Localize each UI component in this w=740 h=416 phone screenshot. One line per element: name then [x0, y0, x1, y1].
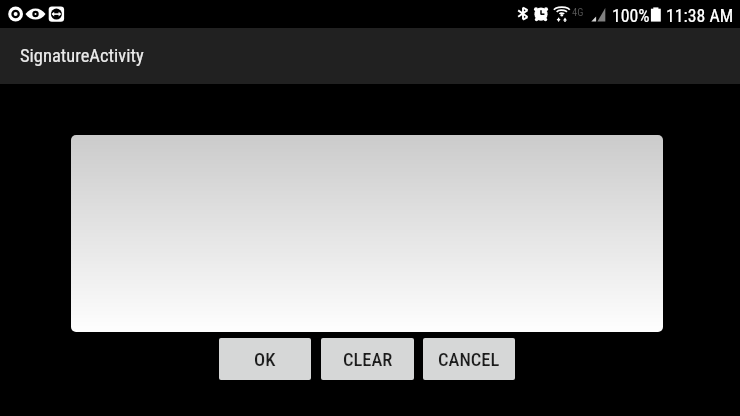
- button[interactable]: CLEAR: [321, 338, 414, 380]
- staticText: OK: [254, 349, 276, 371]
- button[interactable]: OK: [219, 338, 311, 380]
- staticText: CLEAR: [343, 349, 393, 371]
- staticText: 11:38 AM: [666, 5, 734, 26]
- staticText: SignatureActivity: [20, 45, 144, 67]
- button[interactable]: CANCEL: [423, 338, 515, 380]
- button[interactable]: Signature drawing pad: [71, 135, 663, 332]
- staticText: CANCEL: [438, 349, 500, 371]
- staticText: 100%: [612, 5, 650, 26]
- staticText: 4G: [572, 6, 584, 18]
